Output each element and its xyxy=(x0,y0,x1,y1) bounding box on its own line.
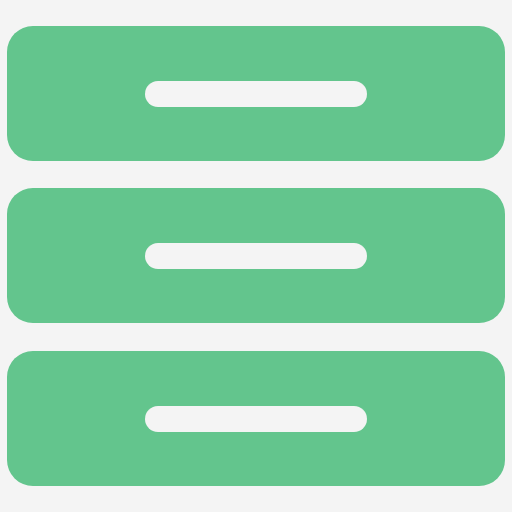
button[interactable]: Server bay 2 xyxy=(7,188,505,323)
button[interactable]: Server bay 3 xyxy=(7,351,505,486)
button[interactable]: Server bay 1 xyxy=(7,26,505,161)
